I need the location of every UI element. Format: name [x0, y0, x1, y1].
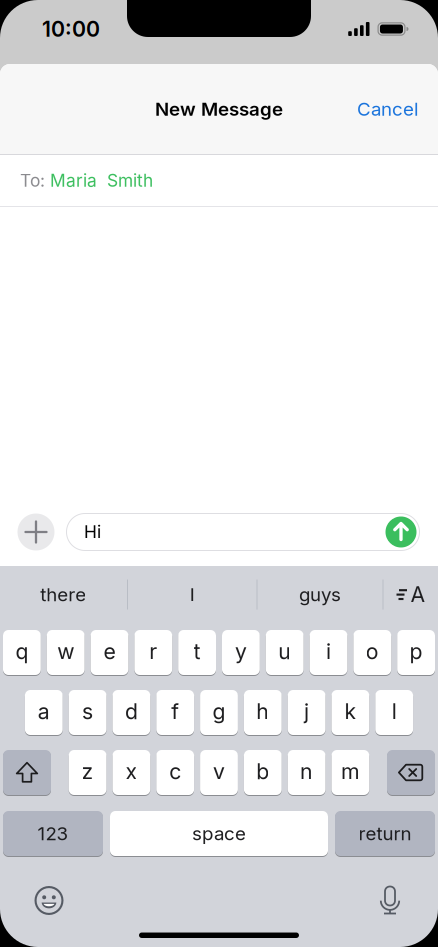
button[interactable]: w: [47, 630, 85, 675]
button[interactable]: k: [331, 690, 369, 735]
button[interactable]: b: [244, 750, 282, 795]
staticText: To:: [20, 170, 45, 191]
button[interactable]: h: [244, 690, 282, 735]
staticText: I: [190, 583, 195, 605]
button[interactable]: e: [91, 630, 128, 675]
staticText: x: [125, 759, 137, 784]
button[interactable]: t: [178, 630, 216, 675]
staticText: u: [278, 639, 291, 664]
staticText: m: [341, 759, 360, 784]
staticText: q: [15, 639, 28, 664]
staticText: j: [304, 699, 309, 724]
staticText: 10:00: [42, 16, 100, 42]
staticText: A: [410, 582, 425, 607]
staticText: e: [103, 639, 115, 664]
button[interactable]: space: [110, 811, 328, 856]
staticText: 123: [37, 822, 68, 844]
button[interactable]: there: [0, 566, 127, 623]
staticText: d: [125, 699, 138, 724]
staticText: Smith: [97, 170, 153, 191]
staticText: Maria: [45, 170, 97, 191]
staticText: i: [326, 639, 331, 664]
button[interactable]: u: [266, 630, 304, 675]
button[interactable]: return: [335, 811, 435, 856]
button[interactable]: Predictions: [383, 566, 438, 623]
button[interactable]: a: [25, 690, 63, 735]
staticText: New Message: [155, 98, 283, 120]
button[interactable]: Emoji: [34, 885, 64, 915]
staticText: o: [366, 639, 379, 664]
button[interactable]: o: [353, 630, 391, 675]
staticText: a: [38, 699, 50, 724]
button[interactable]: Cancel: [357, 98, 419, 120]
staticText: r: [149, 639, 157, 664]
button[interactable]: Delete: [387, 750, 435, 795]
button[interactable]: y: [222, 630, 260, 675]
button[interactable]: s: [69, 690, 106, 735]
staticText: l: [392, 699, 397, 724]
staticText: n: [300, 759, 313, 784]
staticText: b: [256, 759, 269, 784]
button[interactable]: c: [156, 750, 194, 795]
button[interactable]: 123: [3, 811, 103, 856]
button[interactable]: p: [397, 630, 435, 675]
button[interactable]: Shift: [3, 750, 51, 795]
button[interactable]: j: [288, 690, 325, 735]
button[interactable]: v: [200, 750, 238, 795]
button[interactable]: m: [331, 750, 369, 795]
staticText: Cancel: [357, 98, 419, 120]
staticText: t: [194, 639, 201, 664]
button[interactable]: r: [134, 630, 172, 675]
button[interactable]: g: [200, 690, 238, 735]
button[interactable]: d: [112, 690, 150, 735]
button[interactable]: n: [288, 750, 325, 795]
staticText: h: [256, 699, 269, 724]
staticText: c: [169, 759, 181, 784]
staticText: y: [235, 639, 247, 664]
staticText: p: [410, 639, 423, 664]
button[interactable]: f: [156, 690, 194, 735]
button[interactable]: x: [112, 750, 150, 795]
button[interactable]: Dictate: [375, 885, 405, 915]
staticText: there: [40, 583, 86, 605]
button[interactable]: l: [375, 690, 413, 735]
staticText: space: [192, 822, 246, 844]
staticText: z: [82, 759, 94, 784]
staticText: f: [171, 699, 179, 724]
staticText: return: [358, 822, 411, 844]
staticText: w: [57, 639, 74, 664]
staticText: guys: [299, 583, 341, 605]
button[interactable]: I: [128, 566, 256, 623]
button[interactable]: guys: [257, 566, 382, 623]
staticText: s: [82, 699, 93, 724]
button[interactable]: q: [3, 630, 41, 675]
button[interactable]: Send: [385, 516, 416, 547]
staticText: g: [212, 699, 225, 724]
staticText: k: [344, 699, 356, 724]
button[interactable]: i: [310, 630, 347, 675]
button[interactable]: z: [69, 750, 106, 795]
button[interactable]: Add attachment: [17, 513, 54, 550]
staticText: v: [213, 759, 225, 784]
staticText: Hi: [84, 522, 101, 542]
